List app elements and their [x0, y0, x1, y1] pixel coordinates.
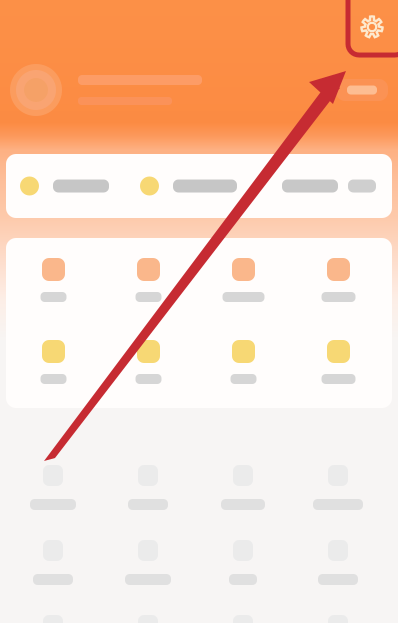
button[interactable]: Service [5, 615, 100, 623]
button[interactable]: Settings [352, 7, 392, 47]
button[interactable] [20, 176, 109, 195]
button[interactable]: Service [290, 465, 385, 510]
button[interactable]: Service [195, 540, 290, 585]
button[interactable]: Service [290, 540, 385, 585]
button[interactable]: Quick action [291, 258, 386, 302]
button[interactable]: Quick action [6, 340, 101, 384]
button[interactable]: Service [5, 465, 100, 510]
button[interactable]: Service [5, 540, 100, 585]
button[interactable]: Service [100, 465, 195, 510]
button[interactable]: Service [195, 615, 290, 623]
button[interactable]: Quick action [291, 340, 386, 384]
button[interactable]: Quick action [101, 258, 196, 302]
button[interactable]: Quick action [101, 340, 196, 384]
button[interactable]: Quick action [196, 258, 291, 302]
button[interactable]: Quick action [196, 340, 291, 384]
button[interactable]: Service [100, 615, 195, 623]
button[interactable]: Service [195, 465, 290, 510]
button[interactable] [140, 176, 237, 195]
button[interactable]: Quick action [6, 258, 101, 302]
button[interactable]: Service [100, 540, 195, 585]
button[interactable]: Service [290, 615, 385, 623]
